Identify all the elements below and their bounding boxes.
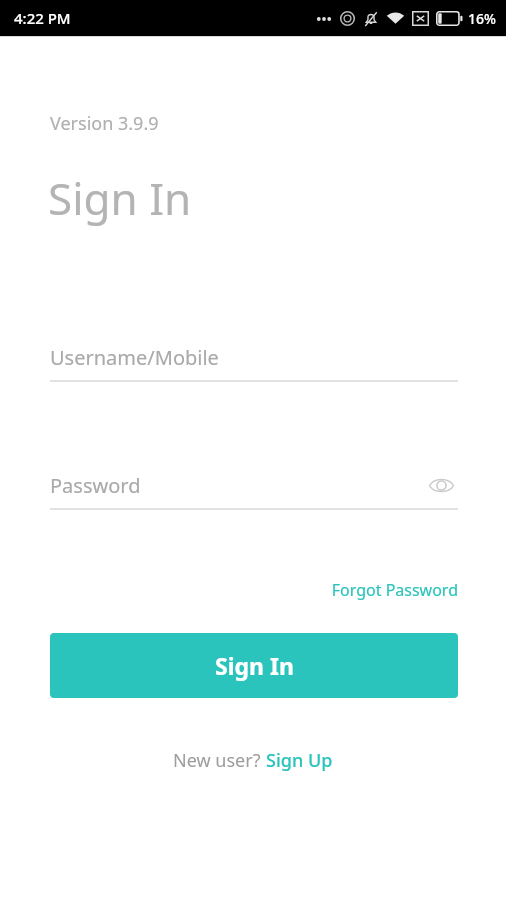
staticText: 16% bbox=[468, 9, 496, 28]
staticText: Sign In bbox=[48, 168, 192, 228]
button[interactable]: Forgot Password bbox=[306, 573, 458, 607]
staticText: Password bbox=[50, 472, 141, 499]
button[interactable]: Username/Mobile bbox=[50, 332, 458, 382]
button[interactable]: Sign In bbox=[50, 633, 458, 698]
button[interactable]: New user? bbox=[173, 748, 333, 773]
staticText: Sign In bbox=[215, 650, 294, 681]
staticText: Sign Up bbox=[266, 748, 333, 773]
button[interactable]: Password bbox=[50, 460, 458, 510]
button[interactable]: Show password bbox=[424, 468, 458, 502]
staticText: Version 3.9.9 bbox=[50, 111, 159, 136]
staticText: Forgot Password bbox=[331, 579, 458, 601]
staticText: New user? bbox=[173, 748, 266, 773]
staticText: Username/Mobile bbox=[50, 344, 219, 371]
staticText: 4:22 PM bbox=[14, 8, 71, 28]
